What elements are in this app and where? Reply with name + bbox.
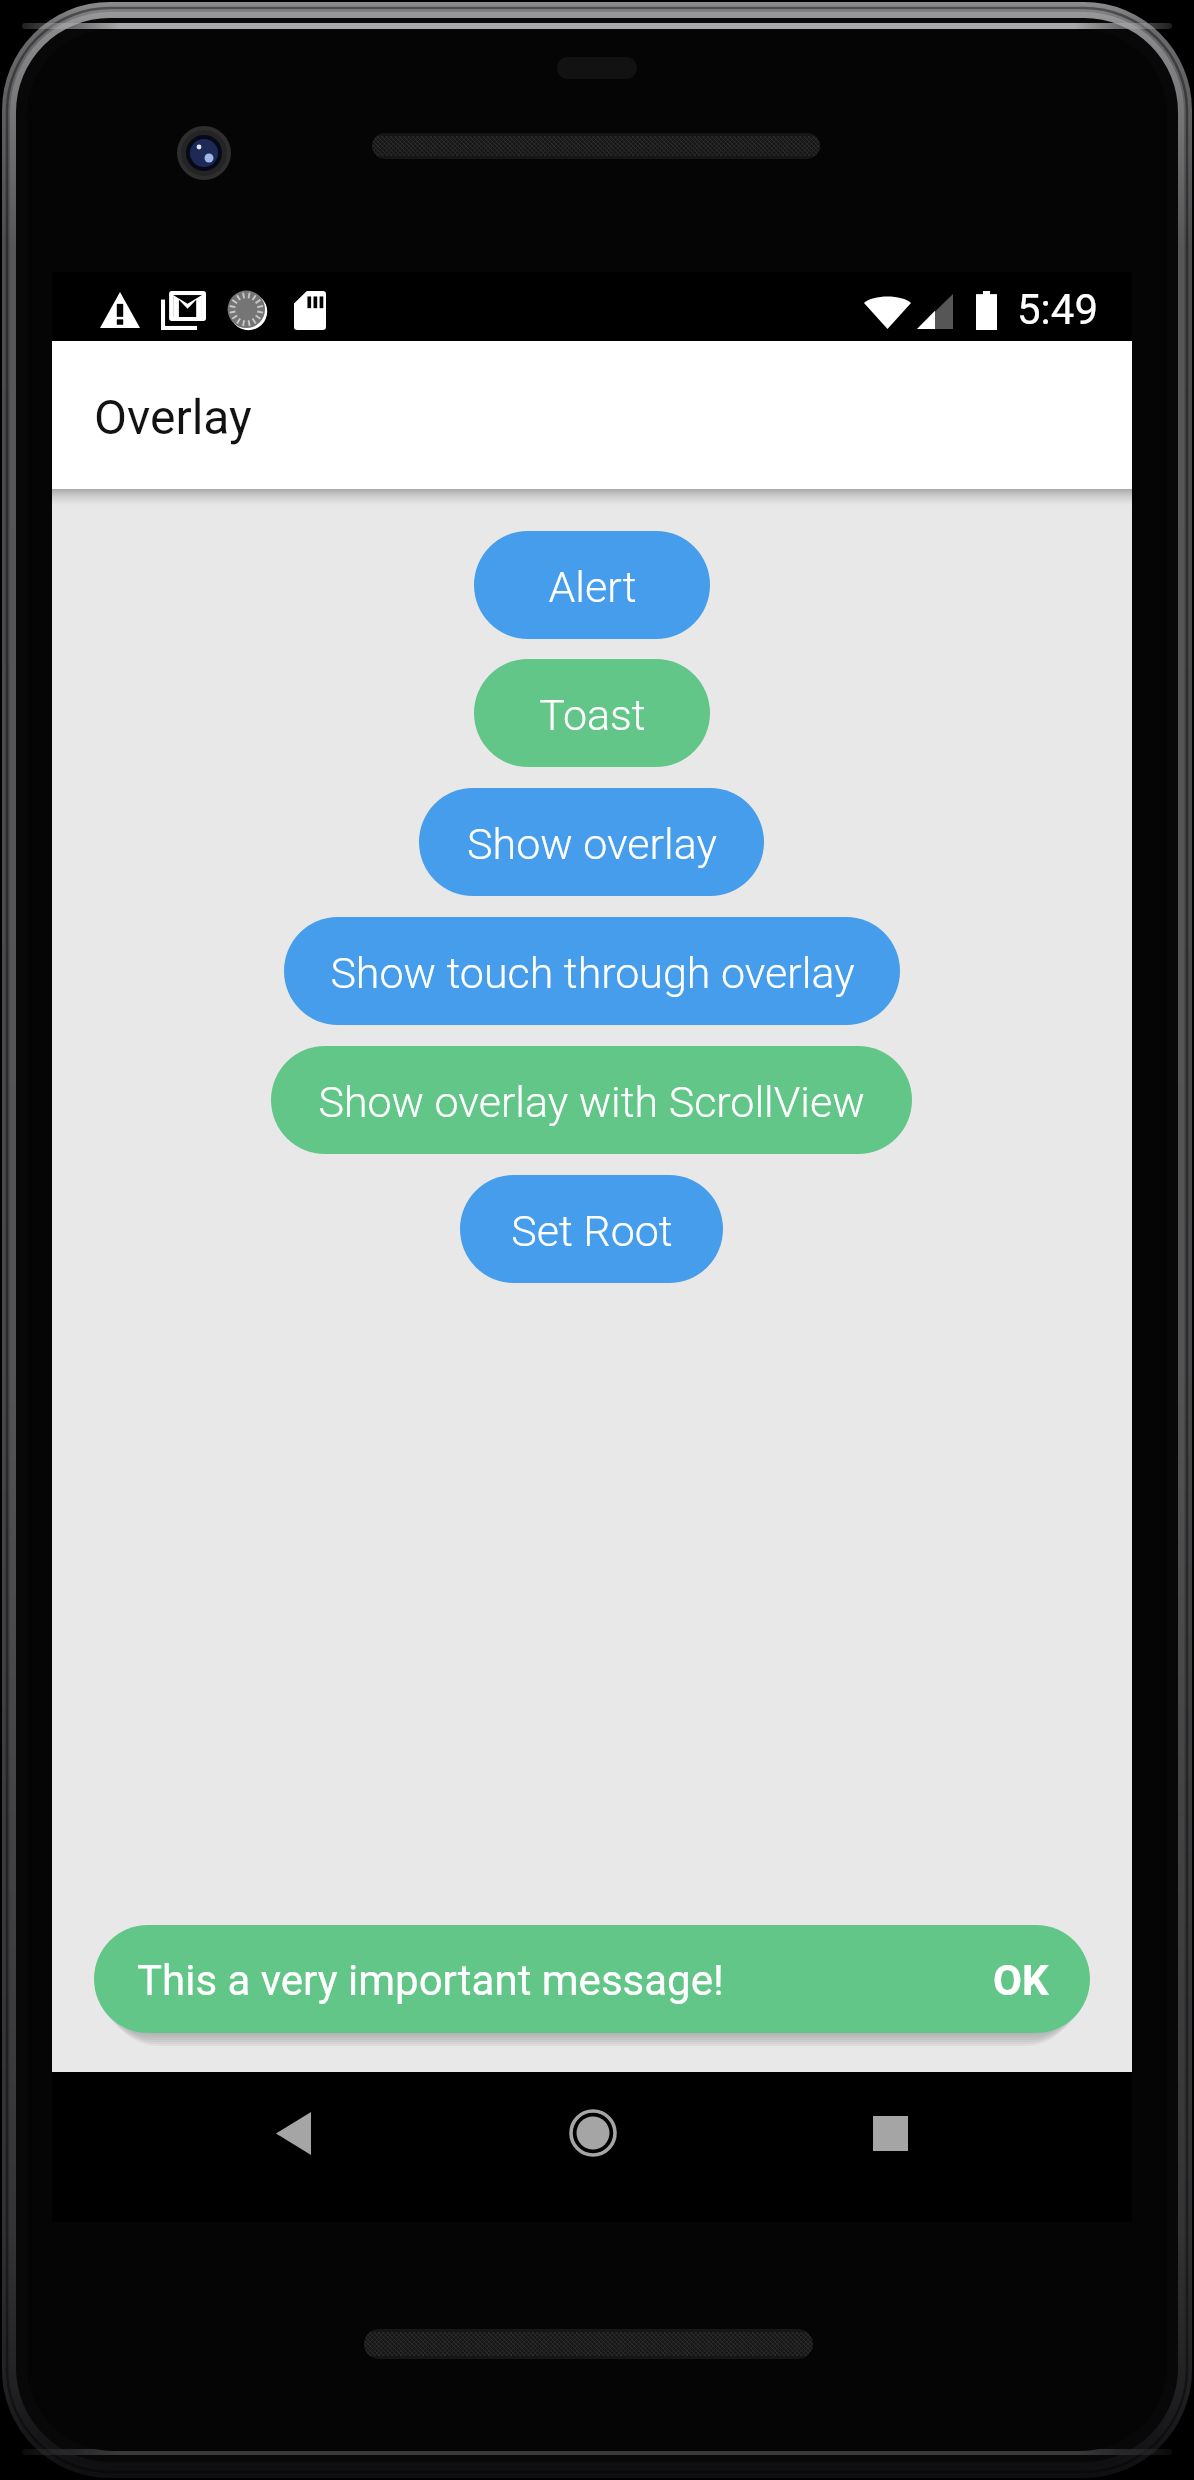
button[interactable]: Recent apps	[840, 2083, 940, 2183]
staticText: Alert	[548, 562, 637, 612]
button[interactable]: Toast	[474, 659, 710, 767]
button[interactable]: OK	[967, 1925, 1075, 2033]
button[interactable]: Back	[243, 2083, 343, 2183]
staticText: Toast	[539, 690, 646, 740]
button[interactable]: Set Root	[460, 1175, 723, 1283]
staticText: This a very important message!	[137, 1956, 724, 2005]
staticText: Show touch through overlay	[330, 948, 855, 998]
button[interactable]: Home	[543, 2083, 643, 2183]
staticText: OK	[993, 1956, 1049, 2005]
staticText: Show overlay	[467, 819, 717, 869]
staticText: 5:49	[1017, 285, 1098, 334]
staticText: Overlay	[94, 389, 252, 445]
staticText: Show overlay with ScrollView	[318, 1077, 865, 1127]
button[interactable]: Show overlay with ScrollView	[271, 1046, 912, 1154]
button[interactable]: This a very important message!	[94, 1925, 1090, 2033]
button[interactable]: Show touch through overlay	[284, 917, 900, 1025]
button[interactable]: Show overlay	[419, 788, 764, 896]
staticText: Set Root	[511, 1206, 673, 1256]
button[interactable]: Alert	[474, 531, 710, 639]
